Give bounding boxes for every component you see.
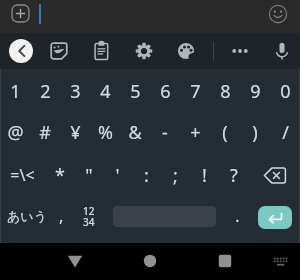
staticText: =\< <box>10 164 35 186</box>
button[interactable]: Clipboard <box>89 39 113 63</box>
staticText: ' <box>115 163 120 188</box>
staticText: / <box>282 120 289 145</box>
button[interactable]: Voice input <box>270 39 294 63</box>
button[interactable]: Enter <box>258 206 292 229</box>
staticText: " <box>85 163 93 188</box>
button[interactable]: Emoji <box>267 3 289 25</box>
staticText: 1 <box>10 79 21 104</box>
staticText: 2 <box>40 79 51 104</box>
staticText: @ <box>7 120 24 145</box>
staticText: 12 <box>83 204 95 218</box>
button[interactable]: , <box>52 195 70 236</box>
button[interactable]: ) <box>240 111 270 153</box>
button[interactable]: . <box>224 195 250 236</box>
staticText: : <box>144 163 149 188</box>
staticText: , <box>59 204 64 227</box>
button[interactable]: Home <box>140 251 160 271</box>
button[interactable]: 8 <box>210 70 240 112</box>
staticText: あいう <box>7 208 47 224</box>
button[interactable]: 0 <box>270 70 300 112</box>
button[interactable]: % <box>90 111 120 153</box>
staticText: * <box>55 163 65 188</box>
staticText: . <box>235 204 240 227</box>
button[interactable]: Back <box>9 39 33 63</box>
staticText: ; <box>173 163 178 188</box>
button[interactable]: Number keypad <box>75 195 105 236</box>
button[interactable]: * <box>45 154 74 196</box>
button[interactable]: Recents <box>215 251 235 271</box>
staticText: 3 <box>70 79 81 104</box>
staticText: 8 <box>220 79 231 104</box>
button[interactable]: " <box>74 154 103 196</box>
button[interactable]: Theme <box>174 39 198 63</box>
staticText: ? <box>230 163 238 188</box>
staticText: 0 <box>280 79 291 104</box>
button[interactable]: @ <box>0 111 30 153</box>
staticText: ( <box>222 120 228 145</box>
staticText: % <box>98 120 113 145</box>
staticText: ¥ <box>70 120 81 145</box>
staticText: 6 <box>160 79 171 104</box>
button[interactable]: + <box>180 111 210 153</box>
staticText: + <box>190 120 201 145</box>
button[interactable]: Stickers <box>47 39 71 63</box>
button[interactable]: 5 <box>120 70 150 112</box>
button[interactable]: ¥ <box>60 111 90 153</box>
button[interactable]: ? <box>219 154 248 196</box>
button[interactable]: ( <box>210 111 240 153</box>
staticText: ! <box>202 163 207 188</box>
button[interactable]: Switch keyboard <box>270 251 290 271</box>
button[interactable]: 9 <box>240 70 270 112</box>
button[interactable]: # <box>30 111 60 153</box>
button[interactable]: - <box>150 111 180 153</box>
button[interactable]: ' <box>103 154 132 196</box>
button[interactable]: 1 <box>0 70 30 112</box>
staticText: 34 <box>83 215 95 229</box>
staticText: 9 <box>250 79 261 104</box>
staticText: # <box>39 120 51 145</box>
button[interactable]: Backspace <box>248 154 300 196</box>
button[interactable]: ! <box>190 154 219 196</box>
button[interactable]: 6 <box>150 70 180 112</box>
button[interactable]: More options <box>228 39 252 63</box>
staticText: - <box>162 120 168 145</box>
button[interactable]: Add attachment <box>10 3 31 24</box>
button[interactable]: ; <box>161 154 190 196</box>
button[interactable]: 7 <box>180 70 210 112</box>
button[interactable]: : <box>132 154 161 196</box>
staticText: & <box>128 120 142 145</box>
button[interactable]: あいう <box>0 195 54 236</box>
button[interactable]: / <box>270 111 300 153</box>
staticText: 4 <box>100 79 111 104</box>
button[interactable]: =\< <box>0 154 45 196</box>
button[interactable]: 3 <box>60 70 90 112</box>
staticText: 5 <box>130 79 141 104</box>
button[interactable]: 4 <box>90 70 120 112</box>
button[interactable]: Hide keyboard <box>65 251 85 271</box>
staticText: 7 <box>190 79 201 104</box>
button[interactable]: Settings <box>132 39 156 63</box>
button[interactable]: & <box>120 111 150 153</box>
staticText: ) <box>252 120 258 145</box>
button[interactable]: 2 <box>30 70 60 112</box>
